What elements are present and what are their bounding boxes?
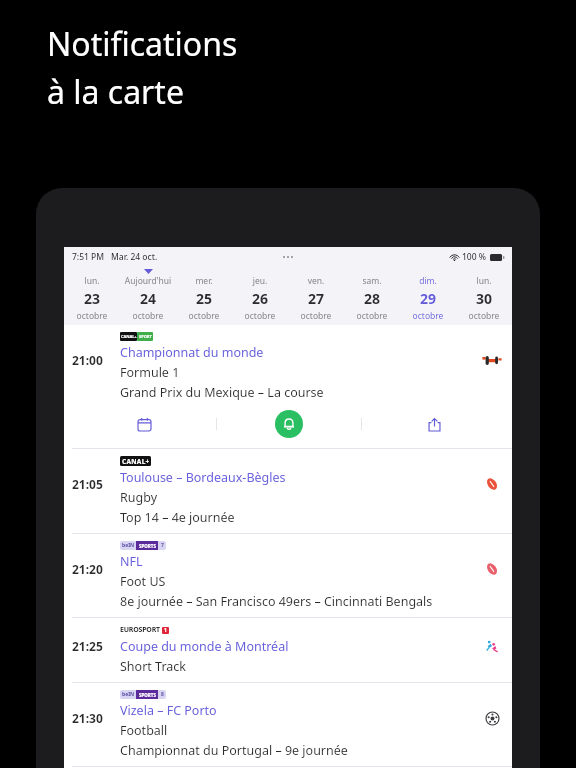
staticText: SPORTS — [139, 543, 156, 549]
staticText: octobre — [120, 310, 176, 322]
staticText: octobre — [400, 310, 456, 322]
staticText: 21:00 — [72, 352, 103, 368]
button[interactable]: 21:00 — [64, 325, 512, 448]
staticText: sam. — [344, 275, 400, 287]
staticText: SPORTS — [139, 692, 156, 698]
staticText: Championnat du Portugal – 9e journée — [120, 742, 348, 759]
staticText: 30 — [456, 289, 512, 308]
staticText: Formule 1 — [120, 364, 180, 381]
staticText: octobre — [232, 310, 288, 322]
staticText: 7 — [161, 542, 164, 549]
button[interactable]: ven. — [288, 267, 344, 325]
staticText: 24 — [120, 289, 176, 308]
staticText: beIN — [122, 542, 135, 549]
staticText: 25 — [176, 289, 232, 308]
button[interactable]: 21:25 — [64, 618, 512, 682]
staticText: NFL — [120, 553, 143, 570]
staticText: Football — [120, 722, 168, 739]
staticText: mer. — [176, 275, 232, 287]
staticText: jeu. — [232, 275, 288, 287]
button[interactable]: dim. — [400, 267, 456, 325]
staticText: Top 14 – 4e journée — [120, 509, 235, 526]
staticText: 21:25 — [72, 638, 103, 654]
staticText: octobre — [176, 310, 232, 322]
staticText: 29 — [400, 289, 456, 308]
staticText: octobre — [456, 310, 512, 322]
staticText: beIN — [122, 691, 135, 698]
button[interactable]: Add to calendar — [72, 407, 216, 441]
staticText: 23 — [64, 289, 120, 308]
staticText: ven. — [288, 275, 344, 287]
button[interactable]: Set notification — [217, 407, 361, 441]
staticText: EUROSPORT — [120, 625, 160, 635]
staticText: Rugby — [120, 489, 158, 506]
staticText: 26 — [232, 289, 288, 308]
staticText: 100 % — [462, 251, 487, 263]
staticText: 1 — [164, 627, 167, 634]
button[interactable]: 21:30 — [64, 683, 512, 766]
staticText: octobre — [344, 310, 400, 322]
button[interactable]: lun. — [64, 267, 120, 325]
staticText: SPORT — [139, 334, 152, 339]
staticText: à la carte — [47, 70, 184, 114]
staticText: 8 — [161, 691, 164, 698]
staticText: Vizela – FC Porto — [120, 702, 217, 719]
staticText: octobre — [288, 310, 344, 322]
staticText: lun. — [456, 275, 512, 287]
staticText: 21:20 — [72, 561, 103, 577]
staticText: Foot US — [120, 573, 166, 590]
staticText: Aujourd'hui — [120, 275, 176, 287]
button[interactable]: 21:05 — [64, 449, 512, 533]
button[interactable]: jeu. — [232, 267, 288, 325]
button[interactable]: Aujourd'hui — [120, 267, 176, 325]
staticText: Short Track — [120, 658, 187, 675]
staticText: Toulouse – Bordeaux-Bègles — [120, 469, 286, 486]
button[interactable]: Share — [362, 407, 506, 441]
staticText: 28 — [344, 289, 400, 308]
staticText: 21:05 — [72, 476, 103, 492]
button[interactable]: 21:20 — [64, 534, 512, 617]
staticText: 7:51 PM — [72, 251, 105, 263]
staticText: 8e journée – San Francisco 49ers – Cinci… — [120, 593, 433, 610]
staticText: dim. — [400, 275, 456, 287]
staticText: Mar. 24 oct. — [111, 251, 158, 263]
staticText: Coupe du monde à Montréal — [120, 638, 289, 655]
staticText: Notifications — [47, 22, 238, 66]
staticText: octobre — [64, 310, 120, 322]
button[interactable]: sam. — [344, 267, 400, 325]
staticText: 21:30 — [72, 710, 103, 726]
staticText: lun. — [64, 275, 120, 287]
staticText: Championnat du monde — [120, 344, 264, 361]
button[interactable]: mer. — [176, 267, 232, 325]
staticText: CANAL+ — [121, 334, 137, 339]
staticText: Grand Prix du Mexique – La course — [120, 384, 324, 401]
button[interactable]: lun. — [456, 267, 512, 325]
staticText: CANAL+ — [122, 457, 150, 466]
staticText: 27 — [288, 289, 344, 308]
